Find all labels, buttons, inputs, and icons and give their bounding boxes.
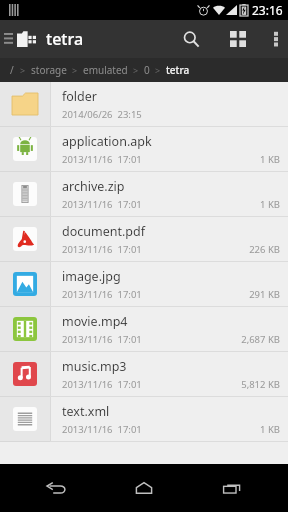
staticText: 1 KB: [260, 153, 280, 166]
button[interactable]: storage: [31, 63, 67, 77]
staticText: image.jpg: [62, 268, 121, 285]
button[interactable]: folder: [0, 82, 288, 127]
staticText: 2013/11/16 17:01: [62, 288, 142, 301]
staticText: document.pdf: [62, 223, 145, 240]
staticText: 226 KB: [249, 243, 280, 256]
staticText: application.apk: [62, 133, 152, 150]
button[interactable]: music.mp3: [0, 352, 288, 397]
button[interactable]: document.pdf: [0, 217, 288, 262]
button[interactable]: 0: [144, 63, 150, 77]
button[interactable]: text.xml: [0, 397, 288, 442]
staticText: 2013/11/16 17:01: [62, 378, 142, 391]
button[interactable]: Grid view: [220, 23, 256, 55]
staticText: 2013/11/16 17:01: [62, 198, 142, 211]
staticText: 1 KB: [260, 423, 280, 436]
staticText: movie.mp4: [62, 313, 128, 330]
staticText: /: [10, 63, 14, 77]
staticText: 2,687 KB: [241, 333, 280, 346]
staticText: >: [20, 64, 26, 76]
button[interactable]: archive.zip: [0, 172, 288, 217]
button[interactable]: tetra: [166, 63, 190, 77]
button[interactable]: /: [8, 63, 16, 77]
button[interactable]: Back: [24, 471, 88, 505]
staticText: music.mp3: [62, 358, 127, 375]
staticText: >: [155, 64, 161, 76]
staticText: 1 KB: [260, 198, 280, 211]
staticText: 0: [144, 63, 150, 77]
staticText: 2013/11/16 17:01: [62, 333, 142, 346]
staticText: storage: [31, 63, 67, 77]
button[interactable]: Search: [173, 23, 210, 56]
button[interactable]: More options: [264, 23, 288, 55]
staticText: emulated: [83, 63, 128, 77]
staticText: 2013/11/16 17:01: [62, 423, 142, 436]
button[interactable]: Navigate up: [0, 25, 38, 53]
button[interactable]: application.apk: [0, 127, 288, 172]
staticText: text.xml: [62, 403, 110, 420]
staticText: tetra: [166, 63, 190, 77]
staticText: tetra: [46, 28, 84, 50]
button[interactable]: emulated: [83, 63, 128, 77]
staticText: 2013/11/16 17:01: [62, 243, 142, 256]
staticText: 2014/06/26 23:15: [62, 108, 142, 121]
staticText: archive.zip: [62, 178, 125, 195]
button[interactable]: Home: [112, 471, 176, 505]
staticText: 2013/11/16 17:01: [62, 153, 142, 166]
staticText: folder: [62, 88, 97, 105]
button[interactable]: Recent apps: [200, 471, 264, 505]
button[interactable]: image.jpg: [0, 262, 288, 307]
staticText: 291 KB: [249, 288, 280, 301]
button[interactable]: movie.mp4: [0, 307, 288, 352]
staticText: >: [133, 64, 139, 76]
staticText: >: [72, 64, 78, 76]
staticText: 23:16: [252, 2, 283, 18]
staticText: 5,812 KB: [241, 378, 280, 391]
